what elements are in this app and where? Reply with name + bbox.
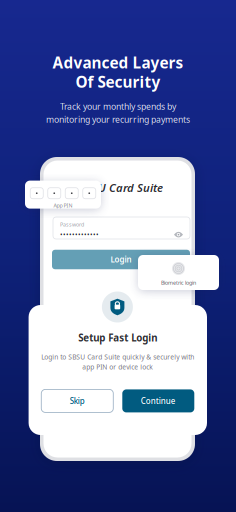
staticText: Login to SBSU Card Suite quickly & secur… xyxy=(41,352,194,361)
staticText: SBSU Card Suite xyxy=(79,180,163,195)
staticText: Of Security xyxy=(75,71,160,92)
staticText: Login xyxy=(110,254,131,265)
staticText: Biometric login xyxy=(161,279,196,286)
button[interactable]: Login xyxy=(52,250,190,269)
staticText: Skip xyxy=(70,395,85,406)
staticText: Password xyxy=(60,221,84,228)
staticText: monitoring your recurring payments xyxy=(46,114,190,125)
staticText: Continue xyxy=(141,395,176,406)
staticText: ••••••••••••• xyxy=(60,230,99,239)
button[interactable]: Continue xyxy=(122,389,194,412)
staticText: app PIN or device lock xyxy=(82,362,153,371)
staticText: Setup Fast Login xyxy=(78,331,157,344)
staticText: App PIN xyxy=(53,202,72,209)
button[interactable]: Skip xyxy=(41,389,113,412)
staticText: Track your monthly spends by xyxy=(60,101,176,112)
staticText: Advanced Layers xyxy=(52,52,183,73)
